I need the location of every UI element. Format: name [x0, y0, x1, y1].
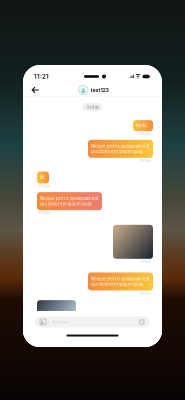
staticText: 11:21	[34, 73, 49, 80]
staticText: Hello	[136, 123, 147, 128]
staticText: Neque porro quisquam est qui dolorem ips…	[91, 143, 149, 154]
staticText: test123	[90, 87, 108, 93]
staticText: Neque porro quisquam est qui dolorem ips…	[91, 276, 149, 287]
button[interactable]: Attach photo	[40, 319, 46, 325]
staticText: 11:21 am	[38, 184, 50, 188]
staticText: 11:21 am	[38, 211, 50, 215]
staticText: 11:21 am	[139, 260, 151, 263]
staticText: 11:21 am	[139, 291, 151, 295]
button[interactable]: test123	[78, 85, 109, 95]
staticText: Today	[86, 104, 98, 110]
staticText: Neque porro quisquam est qui dolorem ips…	[40, 196, 98, 206]
staticText: 11:21 am	[139, 132, 151, 136]
staticText: 11:21 am	[139, 159, 151, 162]
button[interactable]: Send	[138, 319, 145, 325]
staticText: Hi	[40, 175, 44, 180]
staticText: Type Here	[51, 320, 68, 324]
button[interactable]: Back	[31, 84, 41, 95]
